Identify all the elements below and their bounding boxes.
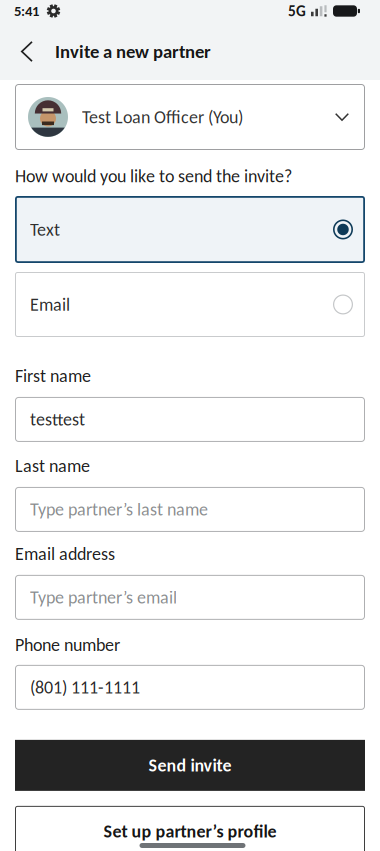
staticText: Type partner’s email <box>30 586 177 608</box>
staticText: Test Loan Officer (You) <box>82 106 243 128</box>
staticText: testtest <box>30 408 85 430</box>
button[interactable]: Type partner’s last name <box>15 487 365 532</box>
staticText: Phone number <box>15 634 120 656</box>
staticText: Last name <box>15 455 90 477</box>
staticText: How would you like to send the invite? <box>15 165 292 187</box>
staticText: Type partner’s last name <box>30 498 208 520</box>
staticText: 5:41 <box>14 2 39 20</box>
staticText: First name <box>15 365 91 387</box>
staticText: Email address <box>15 543 115 565</box>
staticText: (801) 111-1111 <box>30 676 140 698</box>
button[interactable]: testtest <box>15 397 365 442</box>
staticText: Email <box>30 293 70 315</box>
staticText: Set up partner’s profile <box>103 820 276 842</box>
button[interactable]: Type partner’s email <box>15 575 365 620</box>
staticText: Send invite <box>148 754 231 776</box>
button[interactable]: (801) 111-1111 <box>15 665 365 710</box>
button[interactable]: Back <box>0 41 43 62</box>
staticText: Text <box>30 218 60 240</box>
button[interactable]: Email <box>15 272 365 337</box>
button[interactable]: Test Loan Officer (You) <box>15 84 365 150</box>
button[interactable]: Text <box>15 196 365 263</box>
button[interactable]: Set up partner’s profile <box>15 806 365 851</box>
staticText: 5G <box>288 2 306 20</box>
button[interactable]: Send invite <box>15 740 365 791</box>
staticText: Invite a new partner <box>55 40 211 63</box>
